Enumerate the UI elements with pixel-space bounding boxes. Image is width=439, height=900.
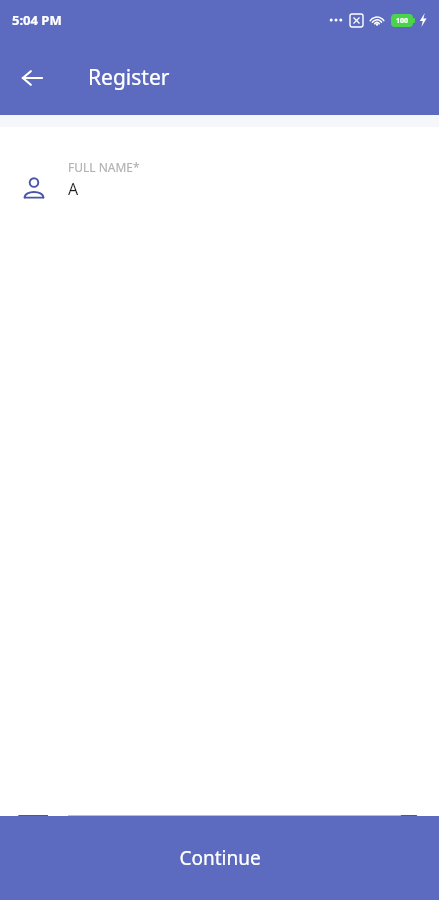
staticText: Register (88, 63, 170, 92)
button[interactable]: Back (8, 54, 56, 102)
button[interactable]: Continue (0, 816, 439, 900)
staticText: FULL NAME* (68, 159, 140, 175)
staticText: 100 (396, 16, 409, 26)
button[interactable]: FULL NAME* (0, 149, 439, 816)
staticText: Continue (179, 845, 261, 871)
staticText: A (68, 178, 79, 200)
staticText: 5:04 PM (12, 11, 62, 29)
